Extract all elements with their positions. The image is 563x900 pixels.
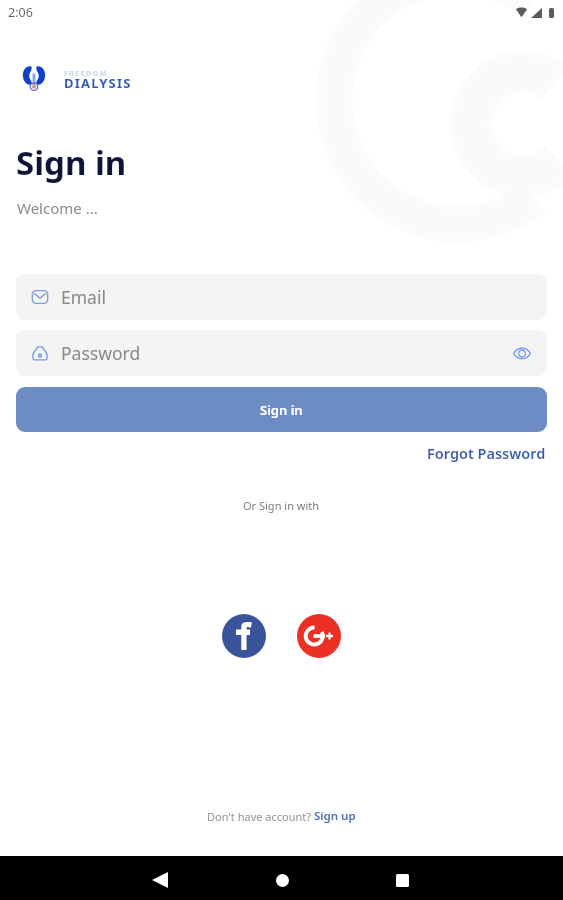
staticText: 2:06 bbox=[8, 4, 33, 21]
button[interactable]: Recents bbox=[380, 858, 424, 900]
staticText: Password bbox=[61, 341, 141, 365]
button[interactable]: Sign up bbox=[314, 808, 356, 824]
staticText: Don't have account? bbox=[207, 809, 314, 824]
button[interactable]: Email bbox=[16, 274, 547, 320]
button[interactable]: Sign in bbox=[16, 387, 547, 432]
staticText: Or Sign in with bbox=[243, 498, 320, 513]
button[interactable]: Home bbox=[260, 858, 304, 900]
button[interactable]: Forgot Password bbox=[427, 443, 563, 463]
button[interactable]: Sign in with Facebook bbox=[222, 614, 266, 658]
staticText: Sign in bbox=[260, 401, 303, 419]
staticText: Welcome ... bbox=[17, 198, 98, 218]
other: Freedom Dialysis logo bbox=[22, 65, 46, 90]
button[interactable]: Sign in with Google bbox=[297, 614, 341, 658]
button[interactable]: Back bbox=[138, 858, 182, 900]
staticText: DIALYSIS bbox=[64, 74, 132, 92]
staticText: Email bbox=[61, 285, 106, 309]
staticText: FREEDOM bbox=[64, 69, 108, 79]
staticText: Sign in bbox=[16, 140, 127, 185]
button[interactable]: Password bbox=[16, 330, 547, 376]
button[interactable]: Show password bbox=[507, 338, 537, 368]
